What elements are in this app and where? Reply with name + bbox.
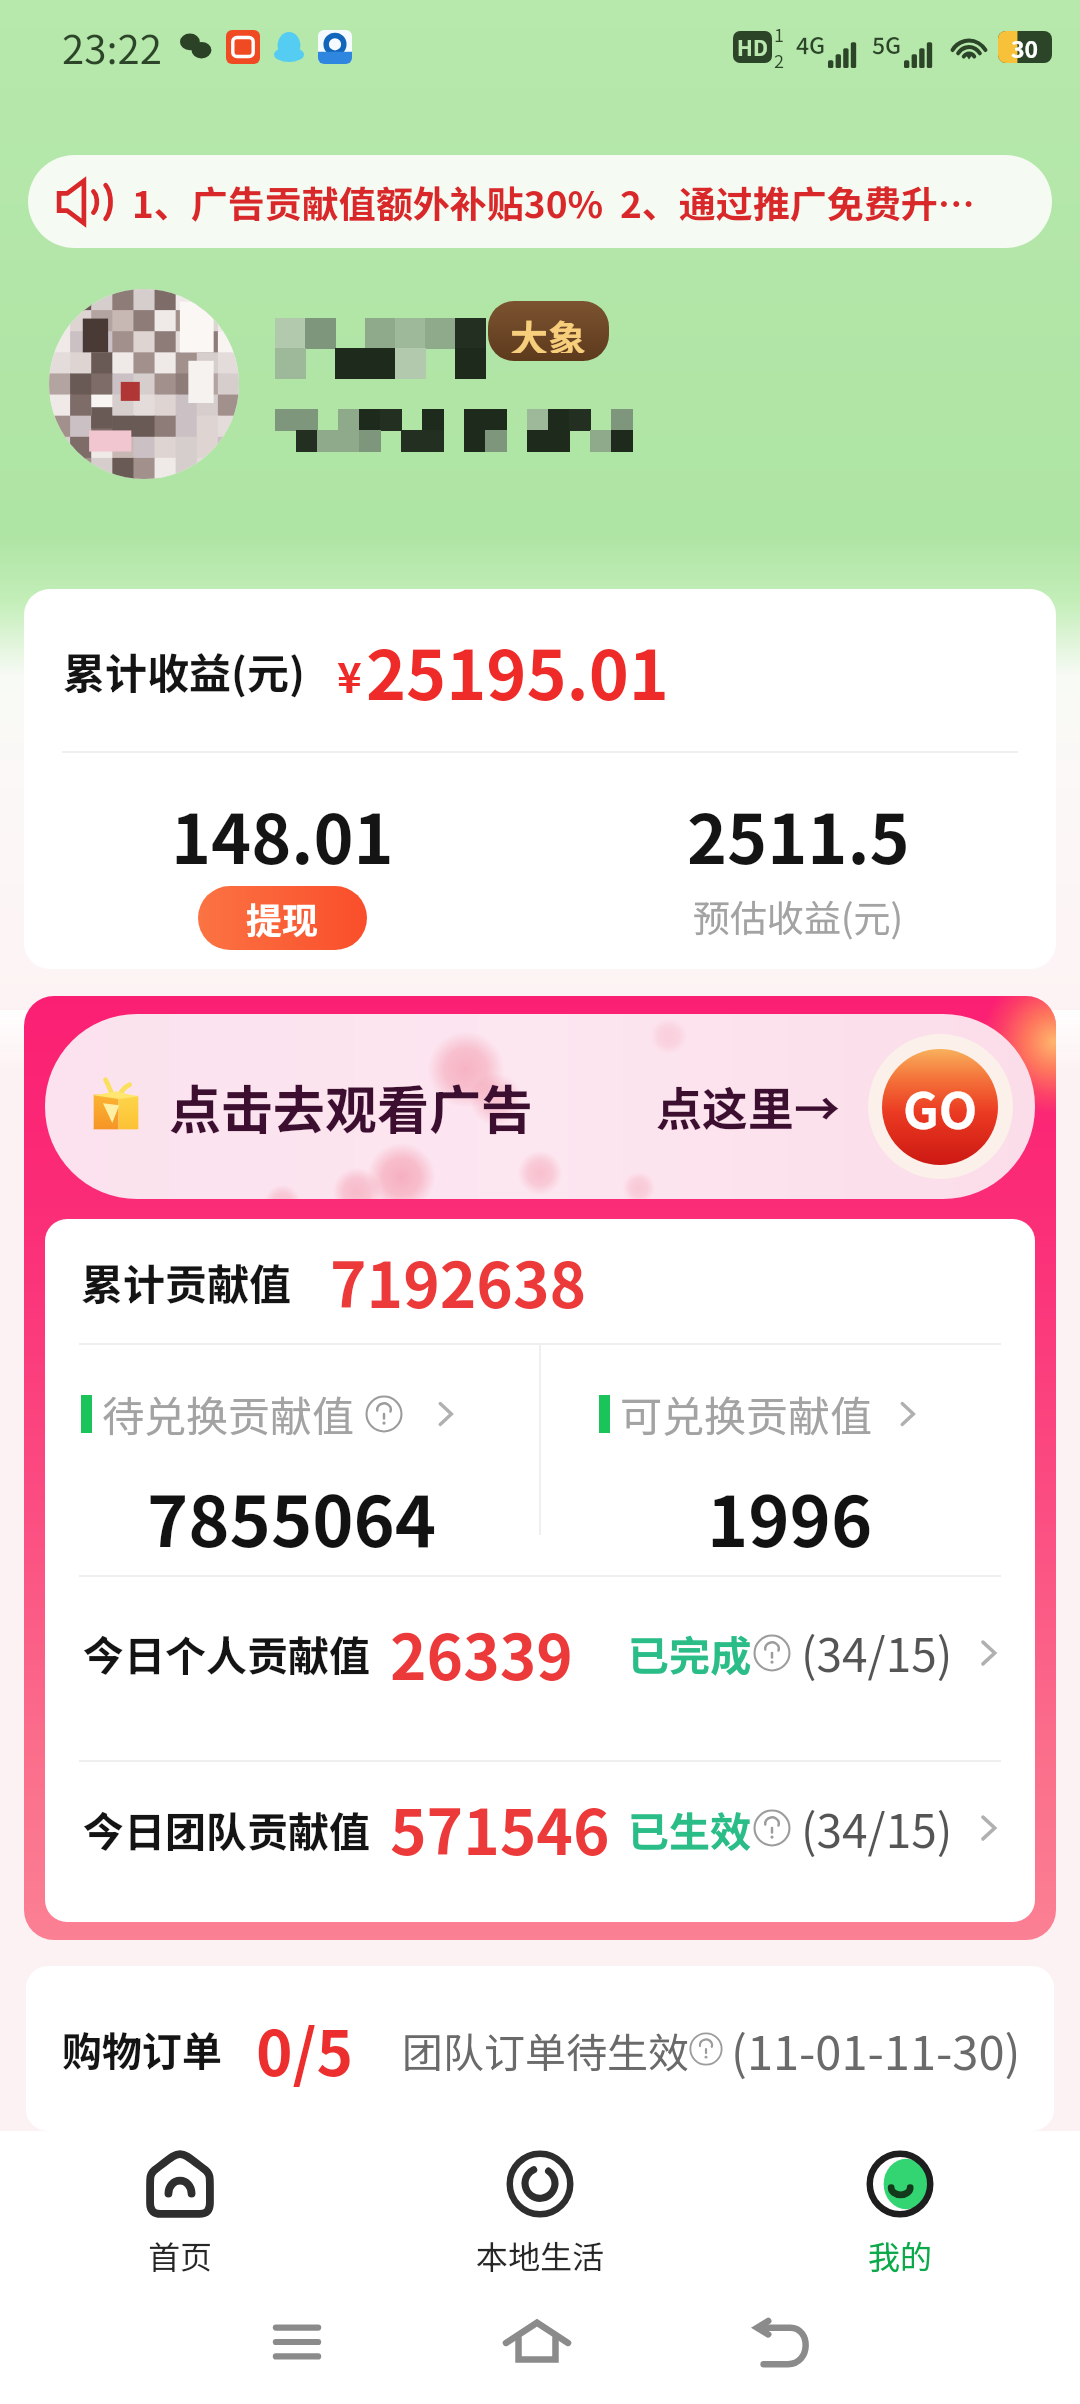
staticText: 大象 xyxy=(510,309,587,353)
staticText: 累计收益(元) xyxy=(63,640,305,701)
button[interactable]: Back xyxy=(736,2299,826,2389)
staticText: 提现 xyxy=(246,892,319,944)
button[interactable]: 今日个人贡献值 xyxy=(45,1577,1035,1760)
staticText: 0/5 xyxy=(256,2004,354,2094)
staticText: 点击去观看广告 xyxy=(169,1069,534,1144)
button[interactable]: Recents xyxy=(254,2299,340,2385)
staticText: 可兑换贡献值 xyxy=(620,1383,873,1444)
staticText: 1996 xyxy=(707,1466,873,1567)
staticText: 已生效 xyxy=(628,1799,751,1858)
staticText: 1、广告贡献值额外补贴30% 2、通过推广免费升… xyxy=(132,175,975,229)
button[interactable]: 1、广告贡献值额外补贴30% 2、通过推广免费升… xyxy=(28,155,1052,248)
button[interactable]: 大象 xyxy=(49,289,1080,479)
staticText: 26339 xyxy=(390,1608,573,1698)
staticText: HD xyxy=(737,32,768,62)
button[interactable]: Home xyxy=(492,2297,582,2387)
button[interactable]: 首页 xyxy=(0,2131,360,2297)
button[interactable]: 购物订单 xyxy=(26,1966,1054,2131)
button[interactable]: 待兑换贡献值 xyxy=(45,1345,539,1575)
button[interactable]: 我的 xyxy=(720,2131,1080,2297)
staticText: 团队订单待生效 xyxy=(402,2020,689,2079)
staticText: 预估收益(元) xyxy=(693,889,904,943)
staticText: 今日团队贡献值 xyxy=(83,1799,370,1858)
staticText: 我的 xyxy=(868,2232,933,2278)
staticText: ¥ xyxy=(337,644,362,705)
staticText: 4G xyxy=(796,27,826,60)
staticText: 571546 xyxy=(390,1783,610,1873)
staticText: 今日个人贡献值 xyxy=(83,1623,370,1682)
staticText: 待兑换贡献值 xyxy=(102,1383,355,1444)
staticText: 25195.01 xyxy=(366,621,669,719)
staticText: 1 xyxy=(774,21,784,47)
staticText: 本地生活 xyxy=(476,2232,605,2278)
staticText: (34/15) xyxy=(801,1619,953,1686)
staticText: 点这里→ xyxy=(656,1073,840,1140)
button[interactable]: 提现 xyxy=(198,886,367,950)
staticText: GO xyxy=(903,1071,978,1143)
staticText: 7855064 xyxy=(147,1466,437,1567)
button[interactable]: 点击去观看广告 xyxy=(45,1014,1035,1199)
staticText: 购物订单 xyxy=(62,2020,222,2078)
staticText: 累计贡献值 xyxy=(81,1251,292,1312)
staticText: 5G xyxy=(872,27,902,60)
button[interactable]: 本地生活 xyxy=(360,2131,720,2297)
staticText: 首页 xyxy=(148,2232,213,2278)
staticText: 已完成 xyxy=(628,1623,751,1682)
staticText: 2 xyxy=(774,47,784,73)
staticText: (34/15) xyxy=(801,1795,953,1862)
staticText: 7192638 xyxy=(330,1236,587,1326)
button[interactable]: 今日团队贡献值 xyxy=(45,1762,1035,1922)
button[interactable]: 可兑换贡献值 xyxy=(541,1345,1035,1575)
staticText: (11-01-11-30) xyxy=(731,2015,1021,2083)
button[interactable]: GO xyxy=(868,1034,1013,1179)
staticText: 148.01 xyxy=(171,785,394,883)
staticText: 30 xyxy=(1011,31,1039,63)
staticText: 2511.5 xyxy=(687,785,910,883)
staticText: 23:22 xyxy=(62,18,162,76)
